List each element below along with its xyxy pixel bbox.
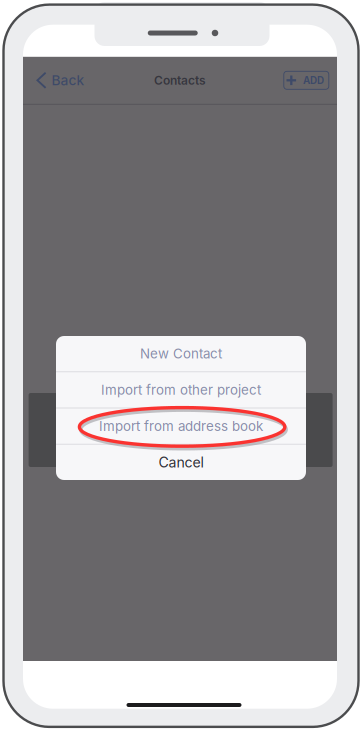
button[interactable]: Import from address book [56, 408, 306, 444]
button[interactable]: Cancel [56, 445, 306, 480]
button[interactable]: Back [23, 57, 95, 104]
button[interactable]: ADD [284, 71, 329, 89]
staticText: Back [52, 72, 85, 89]
staticText: Contacts [154, 73, 206, 87]
staticText: New Contact [140, 346, 222, 362]
staticText: Cancel [158, 454, 203, 471]
staticText: Import from address book [99, 418, 263, 434]
button[interactable]: New Contact [56, 336, 306, 371]
staticText: ADD [303, 74, 324, 86]
staticText: Import from other project [101, 382, 261, 398]
button[interactable]: Import from other project [56, 372, 306, 407]
